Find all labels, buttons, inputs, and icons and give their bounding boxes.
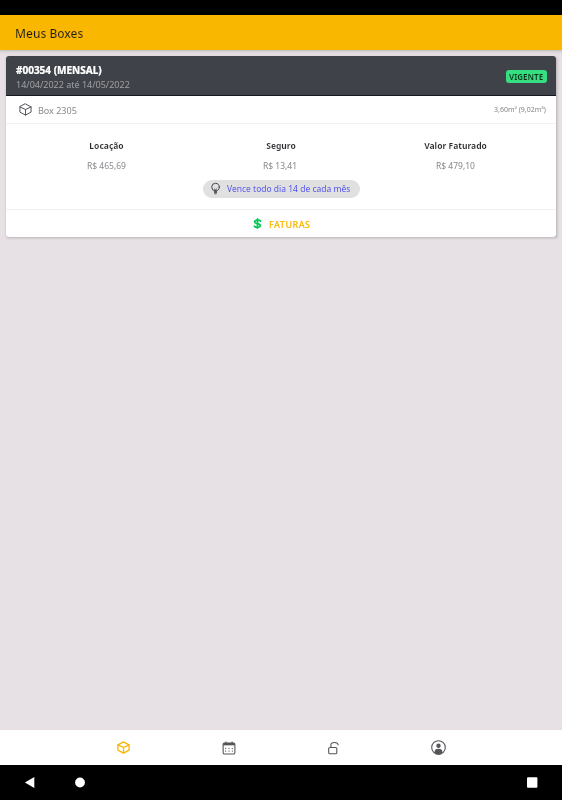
staticText: R$ 13,41 (263, 160, 298, 172)
button[interactable]: Acesso (281, 730, 386, 765)
staticText: R$ 465,69 (87, 160, 126, 172)
staticText: Locação (89, 140, 124, 152)
staticText: Valor Faturado (424, 140, 487, 152)
button[interactable]: Agenda (176, 730, 281, 765)
button[interactable]: FATURAS (6, 210, 556, 237)
staticText: Vence todo dia 14 de cada mês (227, 183, 351, 195)
staticText: 14/04/2022 até 14/05/2022 (16, 78, 130, 90)
button[interactable]: Perfil (386, 730, 491, 765)
staticText: Seguro (266, 140, 296, 152)
staticText: 3,60m² (9,02m³) (494, 105, 546, 115)
staticText: VIGENTE (509, 71, 544, 82)
button[interactable]: Vence todo dia 14 de cada mês (203, 180, 360, 198)
staticText: Box 2305 (38, 104, 77, 116)
staticText: #00354 (MENSAL) (16, 63, 102, 77)
staticText: Meus Boxes (15, 25, 84, 41)
button[interactable]: Boxes (71, 730, 176, 765)
staticText: FATURAS (269, 218, 311, 230)
staticText: R$ 479,10 (436, 160, 475, 172)
